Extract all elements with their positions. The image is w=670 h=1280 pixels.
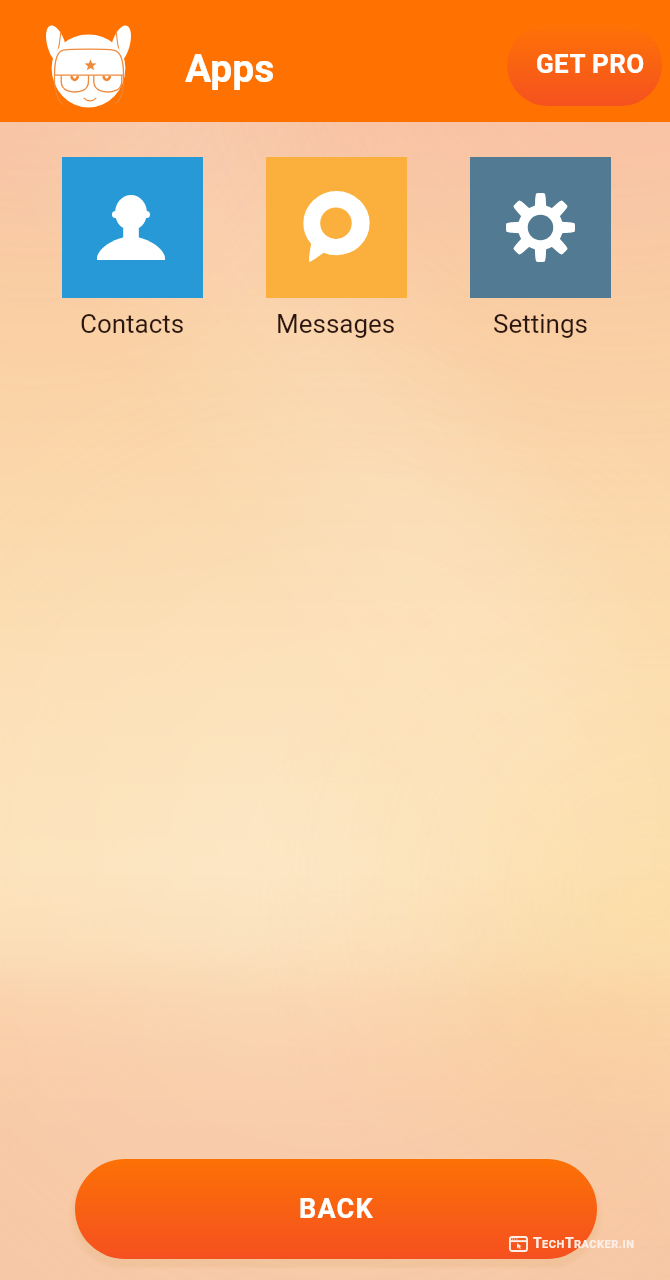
button[interactable]: GET PRO	[507, 24, 662, 106]
button[interactable]: Contacts	[61, 157, 203, 339]
staticText: T	[533, 1235, 542, 1251]
staticText: Contacts	[80, 309, 185, 339]
staticText: RACKER.IN	[574, 1238, 635, 1251]
staticText: Apps	[185, 46, 275, 92]
button[interactable]: BACK	[75, 1159, 597, 1259]
button[interactable]: Settings	[469, 157, 611, 339]
staticText: Messages	[276, 309, 396, 339]
button[interactable]: Messages	[265, 157, 407, 339]
staticText: GET PRO	[536, 49, 645, 79]
other: App logo	[43, 26, 134, 108]
staticText: Settings	[493, 309, 588, 339]
staticText: T	[565, 1235, 574, 1251]
staticText: ECH	[542, 1238, 565, 1251]
staticText: BACK	[299, 1193, 374, 1225]
